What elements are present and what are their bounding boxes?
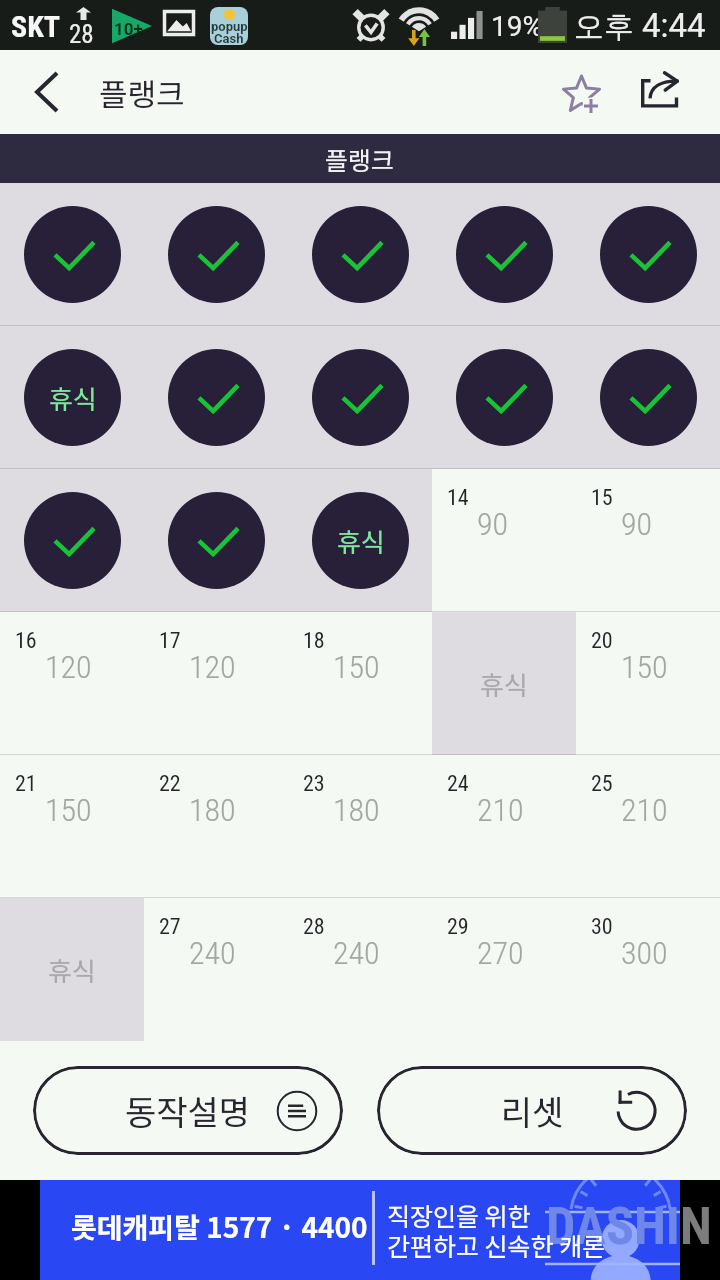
staticText: 20 [591,628,613,654]
button[interactable]: DASHIN [0,1180,720,1280]
staticText: 휴식 [337,522,385,560]
button[interactable] [144,326,288,469]
staticText: 플랭크 [99,70,185,115]
staticText: 90 [477,505,509,543]
staticText: 16 [15,628,37,654]
button[interactable]: 21 [0,755,144,898]
button[interactable]: 23 [288,755,432,898]
staticText: 150 [621,648,668,686]
staticText: DASHIN [546,1196,680,1257]
button[interactable] [144,183,288,326]
button[interactable] [288,183,432,326]
staticText: popup [211,19,248,34]
staticText: 150 [45,791,92,829]
staticText: 플랭크 [325,141,395,177]
staticText: 180 [333,791,380,829]
staticText: 270 [477,934,524,972]
staticText: 14 [447,485,469,511]
staticText: 28 [69,20,94,49]
staticText: 오후 [574,8,634,46]
staticText: 25 [591,771,613,797]
staticText: 19% [491,10,543,43]
button[interactable] [0,469,144,612]
staticText: 28 [303,914,325,940]
button[interactable] [144,469,288,612]
button[interactable]: 휴식 [432,612,576,755]
button[interactable]: Back [0,50,94,134]
staticText: 120 [45,648,92,686]
button[interactable]: 리셋 [377,1066,687,1155]
button[interactable]: 동작설명 [33,1066,343,1155]
button[interactable] [288,326,432,469]
staticText: 15 [591,485,613,511]
staticText: 150 [333,648,380,686]
staticText: 300 [621,934,668,972]
button[interactable]: 휴식 [0,898,144,1041]
button[interactable]: 29 [432,898,576,1041]
staticText: 리셋 [501,1086,564,1135]
staticText: SKT [11,9,61,44]
button[interactable] [576,183,720,326]
button[interactable]: Add to favorites [537,59,623,123]
button[interactable] [0,183,144,326]
button[interactable] [576,326,720,469]
button[interactable] [432,326,576,469]
staticText: DASHIN [546,1196,720,1257]
staticText: 4:44 [642,6,706,45]
button[interactable]: 16 [0,612,144,755]
staticText: 동작설명 [125,1086,251,1135]
staticText: 120 [189,648,236,686]
staticText: 24 [447,771,469,797]
staticText: 90 [621,505,653,543]
button[interactable] [432,183,576,326]
button[interactable]: 28 [288,898,432,1041]
button[interactable]: 25 [576,755,720,898]
staticText: 29 [447,914,469,940]
staticText: 27 [159,914,181,940]
staticText: 10+ [114,19,143,39]
button[interactable]: Share [620,59,706,123]
staticText: 휴식 [49,379,97,417]
staticText: 240 [189,934,236,972]
button[interactable]: 17 [144,612,288,755]
button[interactable]: 22 [144,755,288,898]
button[interactable]: 14 [432,469,576,612]
staticText: 210 [621,791,668,829]
button[interactable]: 18 [288,612,432,755]
button[interactable]: 20 [576,612,720,755]
button[interactable]: 휴식 [0,326,144,469]
staticText: 23 [303,771,325,797]
staticText: 직장인을 위한 [387,1197,531,1233]
button[interactable]: 15 [576,469,720,612]
staticText: 17 [159,628,181,654]
staticText: 휴식 [48,951,96,989]
staticText: 간편하고 신속한 캐론 [387,1227,606,1263]
staticText: 18 [303,628,325,654]
staticText: 롯데캐피탈 1577 · 4400 [71,1206,368,1247]
staticText: Cash [214,31,244,45]
button[interactable]: 30 [576,898,720,1041]
button[interactable]: 27 [144,898,288,1041]
staticText: 21 [15,771,37,797]
staticText: 210 [477,791,524,829]
staticText: 30 [591,914,613,940]
staticText: 휴식 [480,665,528,703]
staticText: 22 [159,771,181,797]
button[interactable]: 휴식 [288,469,432,612]
staticText: 240 [333,934,380,972]
button[interactable]: 24 [432,755,576,898]
staticText: 180 [189,791,236,829]
